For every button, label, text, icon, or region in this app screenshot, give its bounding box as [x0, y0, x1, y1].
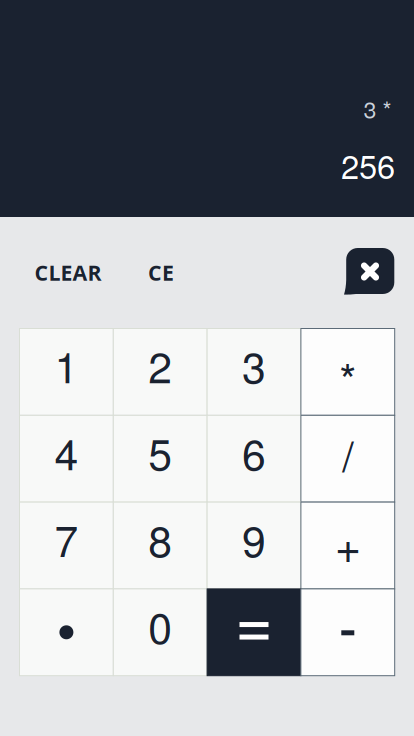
- staticText: CLEAR: [34, 258, 101, 287]
- staticText: 256: [341, 142, 395, 188]
- staticText: *: [339, 345, 356, 408]
- staticText: 2: [148, 334, 172, 395]
- button[interactable]: CLEAR: [0, 0, 414, 736]
- button[interactable]: CE: [0, 0, 414, 736]
- staticText: 3: [242, 334, 266, 395]
- button[interactable]: 8: [0, 0, 414, 736]
- button[interactable]: 5: [0, 0, 414, 736]
- staticText: 5: [148, 421, 172, 482]
- button[interactable]: 6: [0, 0, 414, 736]
- button[interactable]: 3: [0, 0, 414, 736]
- button[interactable]: 9: [0, 0, 414, 736]
- button[interactable]: 7: [0, 0, 414, 736]
- staticText: 6: [242, 421, 266, 482]
- staticText: 0: [148, 595, 172, 656]
- staticText: 8: [148, 508, 172, 569]
- button[interactable]: 4: [0, 0, 414, 736]
- button[interactable]: [0, 0, 414, 736]
- staticText: 1: [54, 334, 78, 395]
- staticText: 7: [54, 508, 78, 569]
- staticText: 4: [54, 421, 78, 482]
- button[interactable]: *: [0, 0, 414, 736]
- button[interactable]: /: [0, 0, 414, 736]
- button[interactable]: [0, 0, 414, 736]
- staticText: CE: [148, 258, 174, 287]
- staticText: +: [335, 511, 361, 576]
- button[interactable]: 1: [0, 0, 414, 736]
- staticText: 9: [242, 508, 266, 569]
- staticText: /: [342, 424, 353, 483]
- button[interactable]: 0: [0, 0, 414, 736]
- button[interactable]: Delete: [0, 0, 414, 736]
- staticText: 3 *: [363, 92, 391, 125]
- button[interactable]: [0, 0, 414, 736]
- button[interactable]: +: [0, 0, 414, 736]
- button[interactable]: 2: [0, 0, 414, 736]
